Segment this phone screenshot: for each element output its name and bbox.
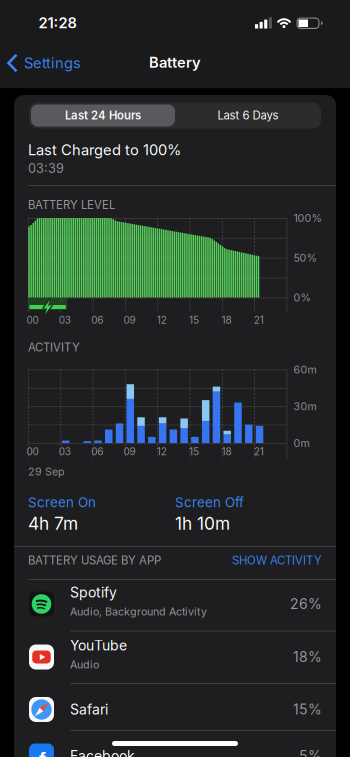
staticText: 03 [59,314,71,326]
staticText: Battery [149,54,201,71]
staticText: 60m [293,363,316,376]
staticText: Audio [70,658,99,671]
staticText: Screen Off [175,494,244,510]
staticText: 00 [26,445,38,458]
staticText: 09 [123,445,135,458]
staticText: BATTERY USAGE BY APP [28,554,161,567]
staticText: 21:28 [38,14,76,32]
button[interactable]: Last 6 Days [176,104,320,126]
button[interactable]: Safari [14,683,336,730]
staticText: 21 [254,314,264,326]
staticText: 18 [221,445,231,458]
staticText: 30m [293,400,316,413]
staticText: Last 6 Days [217,109,278,122]
staticText: BATTERY LEVEL [28,198,115,212]
staticText: 15% [293,701,322,718]
staticText: 29 Sep [28,465,65,478]
button[interactable]: f [14,730,336,757]
staticText: 21 [254,445,264,458]
staticText: 1h 10m [175,513,230,534]
staticText: Safari [70,701,108,718]
staticText: 26% [290,595,322,612]
button[interactable]: Last 24 Hours [31,104,175,126]
staticText: 0% [293,291,310,304]
staticText: Last 24 Hours [65,109,141,122]
staticText: SHOW ACTIVITY [232,554,322,567]
button[interactable]: Spotify [14,579,336,630]
staticText: 06 [91,445,103,458]
staticText: Spotify [70,584,117,601]
staticText: 03:39 [28,161,64,176]
staticText: 15 [189,314,199,326]
staticText: Last Charged to 100% [28,141,181,159]
staticText: 18 [221,314,231,326]
button[interactable]: YouTube [14,630,336,683]
staticText: Facebook [70,747,135,757]
staticText: Settings [24,54,81,72]
staticText: 5% [299,747,322,757]
staticText: 03 [59,445,71,458]
staticText: Audio, Background Activity [70,605,207,618]
staticText: Screen On [28,494,96,510]
button[interactable]: Back to Settings [6,43,81,83]
staticText: ACTIVITY [28,341,80,354]
staticText: 100% [293,211,321,224]
staticText: 4h 7m [28,513,78,534]
staticText: 15 [189,445,199,458]
staticText: f [39,748,46,757]
staticText: 50% [293,251,316,264]
staticText: 06 [91,314,103,326]
button[interactable]: SHOW ACTIVITY [222,550,322,570]
staticText: 12 [157,314,167,326]
staticText: 0m [293,436,309,449]
staticText: 18% [293,648,322,665]
staticText: 09 [123,314,135,326]
staticText: YouTube [70,637,127,654]
staticText: 00 [26,314,38,326]
staticText: 12 [157,445,167,458]
